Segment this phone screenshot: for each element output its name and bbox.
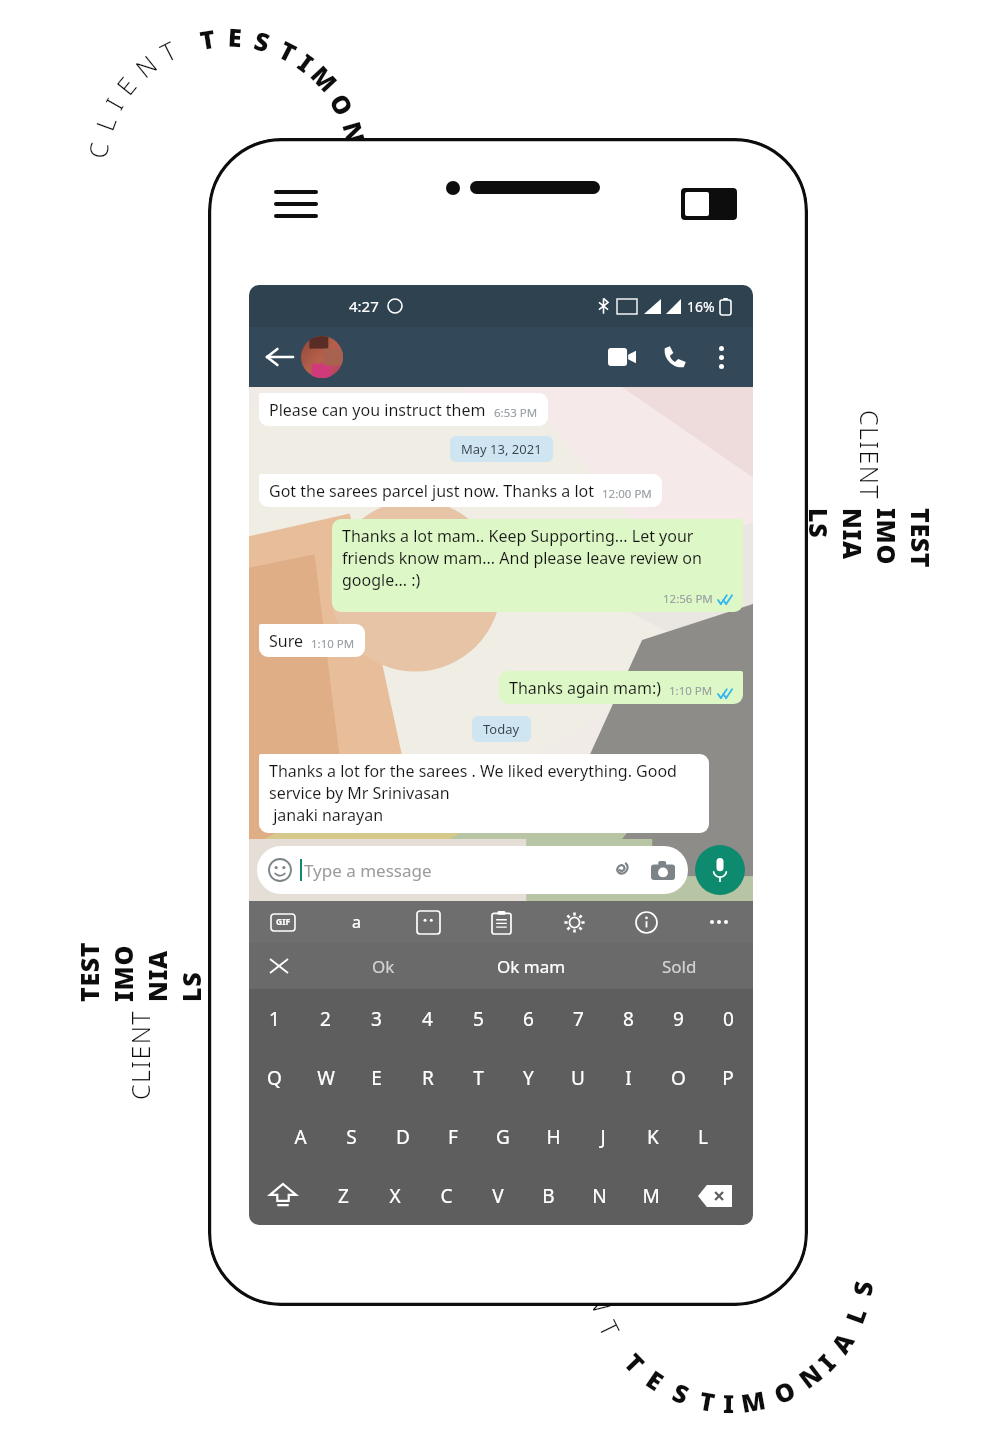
staticText: S bbox=[346, 1124, 357, 1150]
staticText: 4:27 bbox=[349, 296, 379, 316]
button[interactable]: J bbox=[578, 1107, 628, 1166]
staticText: May 13, 2021 bbox=[461, 440, 542, 458]
button[interactable]: E bbox=[351, 1048, 402, 1107]
button[interactable]: Q bbox=[249, 1048, 300, 1107]
staticText: J bbox=[600, 1124, 606, 1150]
staticText: C bbox=[80, 140, 114, 160]
button[interactable]: Sold bbox=[605, 943, 753, 989]
button[interactable]: Z bbox=[317, 1166, 369, 1225]
button[interactable]: V bbox=[472, 1166, 523, 1225]
button[interactable]: 0 bbox=[703, 989, 753, 1048]
staticText: Ok mam bbox=[497, 955, 566, 978]
button[interactable]: Settings bbox=[556, 904, 592, 940]
staticText: TESTIMONIALS bbox=[72, 940, 208, 1002]
button[interactable]: U bbox=[553, 1048, 603, 1107]
button[interactable]: 9 bbox=[653, 989, 703, 1048]
button[interactable]: I bbox=[603, 1048, 653, 1107]
button[interactable]: Attach bbox=[607, 856, 635, 884]
button[interactable]: Clipboard bbox=[483, 904, 519, 940]
staticText: L bbox=[698, 1124, 708, 1150]
staticText: K bbox=[647, 1124, 659, 1150]
staticText: W bbox=[317, 1065, 335, 1091]
button[interactable]: Video call bbox=[601, 336, 643, 378]
button[interactable]: Contact photo bbox=[301, 336, 343, 378]
staticText: V bbox=[492, 1183, 504, 1209]
button[interactable]: Please can you instruct them bbox=[259, 393, 548, 426]
button[interactable]: Collapse bbox=[249, 943, 309, 989]
button[interactable]: S bbox=[326, 1107, 377, 1166]
button[interactable]: 3 bbox=[351, 989, 402, 1048]
button[interactable]: GIF bbox=[265, 904, 301, 940]
staticText: T bbox=[275, 32, 302, 68]
button[interactable]: Translate bbox=[338, 904, 374, 940]
staticText: 3 bbox=[371, 1006, 382, 1032]
button[interactable]: X bbox=[369, 1166, 421, 1225]
button[interactable]: Shift bbox=[249, 1166, 317, 1225]
button[interactable]: T bbox=[453, 1048, 503, 1107]
button[interactable]: D bbox=[377, 1107, 428, 1166]
staticText: service by Mr Srinivasan bbox=[269, 782, 450, 804]
button[interactable]: H bbox=[528, 1107, 578, 1166]
staticText: TESTIMONIALS bbox=[802, 508, 938, 570]
button[interactable]: N bbox=[574, 1166, 625, 1225]
button[interactable]: Y bbox=[503, 1048, 553, 1107]
button[interactable]: B bbox=[523, 1166, 574, 1225]
button[interactable]: G bbox=[478, 1107, 528, 1166]
button[interactable]: F bbox=[428, 1107, 478, 1166]
staticText: 1 bbox=[269, 1006, 280, 1032]
button[interactable]: 2 bbox=[300, 989, 351, 1048]
button[interactable]: Camera bbox=[649, 856, 677, 884]
staticText: T bbox=[594, 1315, 628, 1341]
staticText: CLIENT bbox=[123, 1002, 157, 1100]
button[interactable]: M bbox=[625, 1166, 676, 1225]
button[interactable]: R bbox=[402, 1048, 453, 1107]
staticText: O bbox=[768, 1372, 800, 1410]
button[interactable]: 5 bbox=[453, 989, 503, 1048]
button[interactable]: 4 bbox=[402, 989, 453, 1048]
button[interactable]: A bbox=[275, 1107, 326, 1166]
button[interactable]: Thanks a lot for the sarees . We liked e… bbox=[259, 754, 709, 833]
button[interactable]: P bbox=[703, 1048, 753, 1107]
staticText: 8 bbox=[623, 1006, 634, 1032]
button[interactable]: 7 bbox=[553, 989, 603, 1048]
staticText: I bbox=[293, 46, 321, 78]
staticText: L bbox=[587, 1220, 622, 1242]
button[interactable]: Backspace bbox=[676, 1166, 753, 1225]
staticText: 4 bbox=[422, 1006, 433, 1032]
staticText: D bbox=[396, 1124, 410, 1150]
button[interactable]: Thanks again mam:) bbox=[499, 671, 743, 704]
staticText: N bbox=[592, 1183, 607, 1209]
button[interactable]: 1 bbox=[249, 989, 300, 1048]
staticText: A bbox=[823, 1325, 860, 1359]
button[interactable]: Type a message bbox=[257, 846, 688, 894]
button[interactable]: Ok bbox=[309, 943, 457, 989]
staticText: Sure bbox=[269, 630, 303, 652]
button[interactable]: Back bbox=[263, 340, 297, 374]
staticText: T bbox=[154, 33, 181, 67]
button[interactable]: Got the sarees parcel just now. Thanks a… bbox=[259, 474, 662, 507]
button[interactable]: Menu bbox=[274, 190, 318, 226]
button[interactable]: 6 bbox=[503, 989, 553, 1048]
button[interactable]: O bbox=[653, 1048, 703, 1107]
button[interactable]: Stickers bbox=[410, 904, 446, 940]
button[interactable]: W bbox=[300, 1048, 351, 1107]
staticText: L bbox=[87, 111, 122, 135]
button[interactable]: More bbox=[701, 904, 737, 940]
button[interactable]: Call bbox=[653, 336, 695, 378]
button[interactable]: Thanks a lot mam.. Keep Supporting... Le… bbox=[332, 519, 743, 612]
staticText: E bbox=[108, 69, 142, 100]
button[interactable]: Ok mam bbox=[457, 943, 605, 989]
button[interactable]: Sure bbox=[259, 624, 365, 657]
staticText: I bbox=[97, 92, 129, 114]
button[interactable]: Info bbox=[628, 904, 664, 940]
button[interactable]: More options bbox=[703, 339, 739, 375]
button[interactable]: 8 bbox=[603, 989, 653, 1048]
staticText: I bbox=[723, 1386, 735, 1418]
staticText: Please can you instruct them bbox=[269, 399, 486, 421]
staticText: F bbox=[448, 1124, 458, 1150]
button[interactable]: C bbox=[421, 1166, 472, 1225]
button[interactable]: Voice message bbox=[695, 845, 745, 895]
button[interactable]: K bbox=[628, 1107, 678, 1166]
button[interactable]: L bbox=[678, 1107, 728, 1166]
